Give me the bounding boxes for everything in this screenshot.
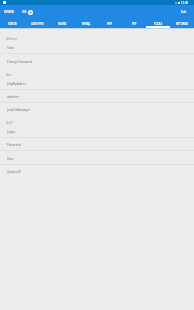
button[interactable]: phpFileManager bbox=[0, 103, 194, 116]
staticText: LIGHTTPD bbox=[31, 22, 44, 26]
staticText: SETTINGS bbox=[176, 22, 189, 26]
staticText: PHP bbox=[107, 22, 113, 26]
staticText: W4 bbox=[22, 10, 27, 14]
staticText: WebFace bbox=[6, 37, 17, 41]
staticText: Start bbox=[7, 46, 14, 50]
staticText: phpMyAdmin bbox=[7, 82, 26, 86]
button[interactable]: Update IP bbox=[0, 165, 194, 178]
button[interactable]: adminer bbox=[0, 90, 194, 103]
staticText: Update IP bbox=[7, 170, 21, 174]
button[interactable]: TOOLS bbox=[146, 18, 170, 28]
staticText: Host bbox=[7, 157, 14, 161]
button[interactable]: Start bbox=[0, 41, 194, 54]
button[interactable]: MYSQL bbox=[74, 18, 98, 28]
staticText: FTP bbox=[132, 22, 137, 26]
button[interactable]: Password bbox=[0, 138, 194, 151]
button[interactable]: STATUS bbox=[0, 18, 25, 28]
staticText: Misc bbox=[6, 73, 12, 77]
button[interactable]: NGINX bbox=[50, 18, 74, 28]
button[interactable]: phpMyAdmin bbox=[0, 77, 194, 90]
staticText: Change Password bbox=[7, 60, 33, 64]
staticText: 12:36 bbox=[181, 1, 189, 5]
staticText: MYSQL bbox=[82, 22, 91, 26]
button[interactable]: Host bbox=[0, 152, 194, 165]
button[interactable]: Exit bbox=[174, 7, 194, 17]
staticText: adminer bbox=[7, 95, 19, 99]
button[interactable]: Start server bbox=[28, 10, 33, 15]
button[interactable]: Change Password bbox=[0, 55, 194, 68]
staticText: phpFileManager bbox=[7, 108, 31, 112]
button[interactable]: LIGHTTPD bbox=[25, 18, 50, 28]
staticText: No-IP bbox=[6, 121, 13, 125]
staticText: Password bbox=[7, 143, 21, 147]
button[interactable]: Login bbox=[0, 125, 194, 138]
button[interactable]: PHP bbox=[98, 18, 122, 28]
staticText: TOOLS bbox=[154, 22, 163, 26]
staticText: Exit bbox=[181, 10, 187, 14]
staticText: NGINX bbox=[58, 22, 67, 26]
staticText: STATUS bbox=[8, 22, 18, 26]
button[interactable]: SETTINGS bbox=[170, 18, 194, 28]
staticText: Login bbox=[7, 130, 15, 134]
button[interactable]: FTP bbox=[122, 18, 146, 28]
staticText: KSWEB bbox=[4, 10, 14, 14]
